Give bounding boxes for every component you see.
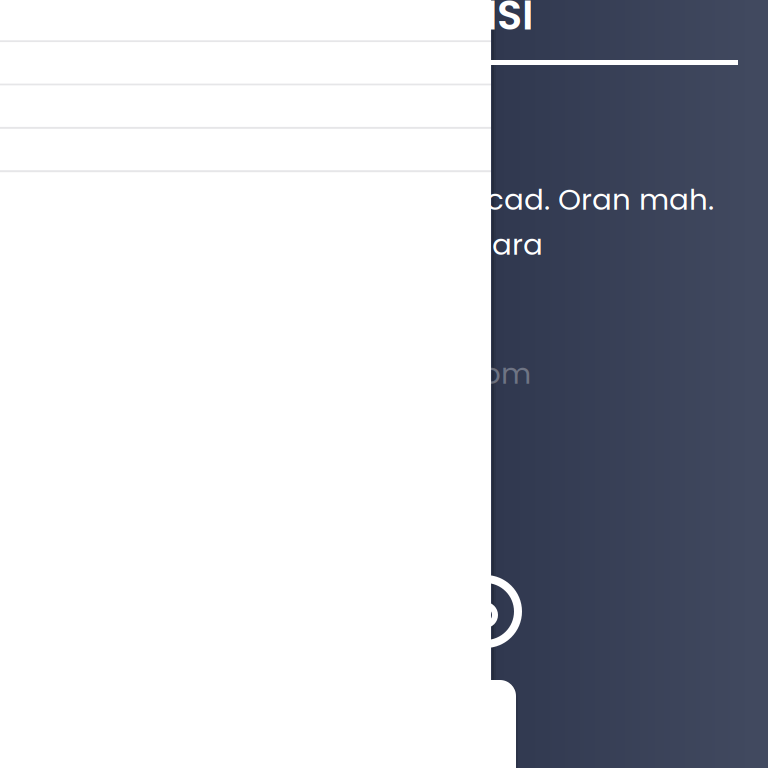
- button[interactable]: Record: [0, 0, 65, 65]
- staticText: Vortara: [431, 224, 543, 265]
- staticText: CANSI: [405, 0, 533, 44]
- button[interactable]: List row: [0, 86, 491, 129]
- staticText: Tinuom: [421, 353, 531, 394]
- button[interactable]: Mini player: [0, 680, 516, 768]
- button[interactable]: List row: [0, 0, 491, 42]
- button[interactable]: List row: [0, 129, 491, 172]
- staticText: Rescad. Oran mah.: [435, 179, 714, 220]
- button[interactable]: List row: [0, 42, 491, 86]
